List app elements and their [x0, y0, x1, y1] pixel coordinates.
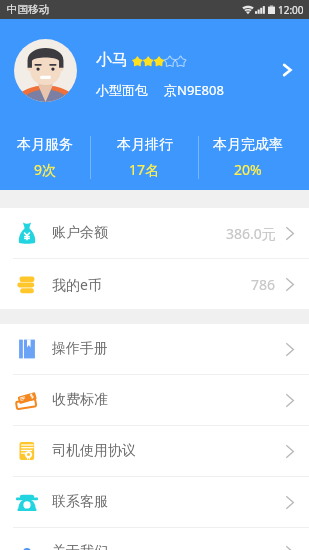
staticText: 本月完成率	[213, 136, 283, 154]
button[interactable]: 收费标准	[0, 375, 309, 425]
staticText: 关于我们	[52, 543, 108, 550]
staticText: 小型面包	[96, 82, 148, 98]
staticText: 京N9E808	[164, 81, 224, 99]
button[interactable]: 联系客服	[0, 477, 309, 527]
staticText: 20%	[234, 160, 262, 179]
staticText: 联系客服	[52, 493, 108, 511]
staticText: 司机使用协议	[52, 442, 136, 460]
staticText: 本月排行	[117, 136, 173, 154]
button[interactable]: 关于我们	[0, 528, 309, 550]
staticText: 小马	[96, 50, 128, 70]
button[interactable]: 小马	[0, 19, 309, 121]
staticText: 17名	[129, 160, 160, 179]
staticText: 操作手册	[52, 340, 108, 358]
other: Profile details	[279, 62, 295, 78]
staticText: 中国移动	[7, 3, 49, 16]
button[interactable]: 账户余额	[0, 208, 309, 258]
staticText: 账户余额	[52, 224, 108, 242]
staticText: 本月服务	[17, 136, 73, 154]
button[interactable]: 操作手册	[0, 324, 309, 374]
staticText: 我的e币	[52, 275, 102, 294]
staticText: 386.0元	[226, 224, 276, 243]
staticText: 收费标准	[52, 391, 108, 409]
staticText: 12:00	[278, 3, 304, 17]
staticText: 786	[251, 275, 276, 294]
staticText: 9次	[34, 160, 57, 179]
button[interactable]: 司机使用协议	[0, 426, 309, 476]
button[interactable]: 我的e币	[0, 259, 309, 309]
